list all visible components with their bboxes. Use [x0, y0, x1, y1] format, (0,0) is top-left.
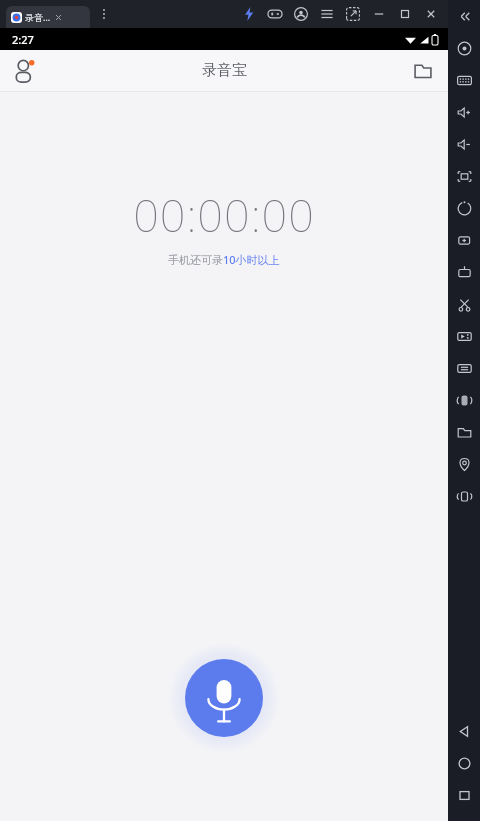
staticText: 00:00:00: [133, 184, 315, 245]
button[interactable]: Back: [448, 715, 480, 747]
button[interactable]: Vibrate: [448, 480, 480, 512]
staticText: 2:27: [12, 32, 34, 47]
button[interactable]: Shared folder: [448, 416, 480, 448]
button[interactable]: Install APK: [448, 256, 480, 288]
staticText: 手机还可录10小时以上: [168, 252, 280, 267]
button[interactable]: Recordings folder: [408, 56, 438, 86]
button[interactable]: Shake: [448, 384, 480, 416]
button[interactable]: Game controls: [262, 1, 288, 27]
button[interactable]: Rotate: [448, 192, 480, 224]
button[interactable]: Recents: [448, 779, 480, 811]
button[interactable]: Boost: [236, 1, 262, 27]
button[interactable]: Volume up: [448, 96, 480, 128]
button[interactable]: 录音…: [6, 6, 90, 28]
button[interactable]: More options: [94, 4, 114, 24]
staticText: 录音…: [25, 11, 51, 23]
button[interactable]: Transfer: [448, 352, 480, 384]
button[interactable]: Screenshot panel: [448, 224, 480, 256]
button[interactable]: Maximize: [392, 1, 418, 27]
staticText: 录音宝: [202, 61, 247, 80]
button[interactable]: Screenshot: [340, 1, 366, 27]
button[interactable]: Keyboard: [448, 64, 480, 96]
button[interactable]: Close tab: [53, 12, 64, 23]
button[interactable]: Home: [448, 747, 480, 779]
button[interactable]: Volume down: [448, 128, 480, 160]
button[interactable]: Menu: [314, 1, 340, 27]
button[interactable]: Profile: [9, 55, 41, 87]
button[interactable]: Cut: [448, 288, 480, 320]
button[interactable]: Resize: [448, 160, 480, 192]
button[interactable]: Power: [448, 32, 480, 64]
button[interactable]: Minimize: [366, 1, 392, 27]
button[interactable]: Record video: [448, 320, 480, 352]
button[interactable]: Close: [418, 1, 444, 27]
button[interactable]: Start recording: [168, 642, 280, 754]
button[interactable]: Location: [448, 448, 480, 480]
button[interactable]: Collapse: [448, 0, 480, 32]
button[interactable]: Account: [288, 1, 314, 27]
